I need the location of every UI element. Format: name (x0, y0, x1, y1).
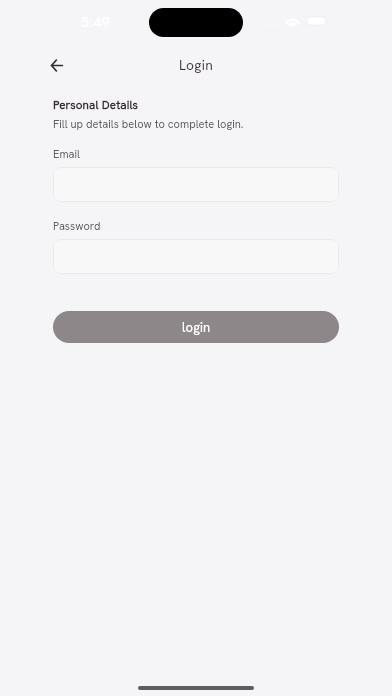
button[interactable]: login (53, 311, 339, 343)
staticText: Personal Details (53, 97, 139, 112)
button[interactable] (53, 239, 339, 274)
staticText: login (182, 319, 211, 336)
staticText: 5:49 (81, 13, 111, 31)
button[interactable] (53, 167, 339, 202)
button[interactable]: Back (39, 51, 75, 79)
staticText: Fill up details below to complete login. (53, 117, 244, 131)
staticText: Login (179, 56, 214, 74)
staticText: Password (53, 219, 101, 233)
staticText: Email (53, 147, 80, 161)
